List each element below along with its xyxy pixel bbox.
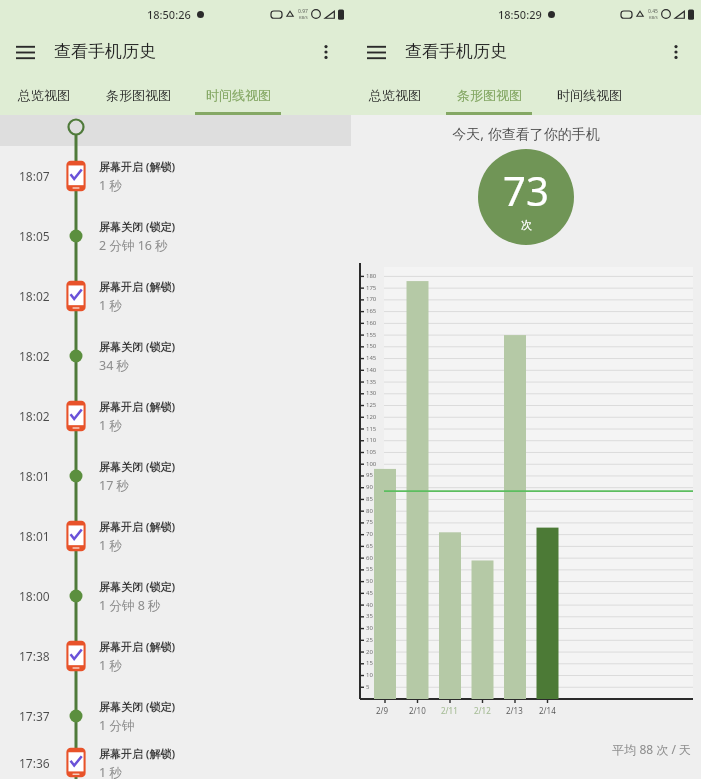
button[interactable]: 18:02: [0, 326, 351, 386]
staticText: 条形图视图: [457, 87, 522, 103]
staticText: 95: [366, 471, 373, 479]
staticText: 1 秒: [99, 764, 122, 779]
button[interactable]: 18:02: [0, 266, 351, 326]
staticText: 1 分钟: [99, 717, 135, 734]
staticText: 155: [366, 331, 377, 339]
staticText: KB/S: [649, 15, 658, 20]
staticText: 2/10: [409, 705, 426, 716]
staticText: 18:02: [19, 408, 50, 424]
staticText: 115: [366, 425, 377, 433]
staticText: 屏幕关闭 (锁定): [99, 579, 176, 594]
staticText: 2/13: [506, 705, 523, 716]
staticText: 18:02: [19, 348, 50, 364]
staticText: 110: [366, 436, 377, 444]
button[interactable]: 17:38: [0, 626, 351, 686]
button[interactable]: 18:01: [0, 506, 351, 566]
staticText: 80: [366, 507, 373, 515]
staticText: 屏幕关闭 (锁定): [99, 219, 176, 234]
staticText: 屏幕关闭 (锁定): [99, 339, 176, 354]
button[interactable]: 18:01: [0, 446, 351, 506]
staticText: 时间线视图: [557, 87, 622, 103]
staticText: 18:01: [19, 468, 50, 484]
staticText: 1 秒: [99, 417, 122, 434]
staticText: 屏幕开启 (解锁): [99, 159, 176, 174]
staticText: 查看手机历史: [54, 41, 156, 62]
staticText: 17:36: [19, 755, 50, 771]
staticText: 屏幕关闭 (锁定): [99, 459, 176, 474]
staticText: 2/12: [474, 705, 491, 716]
button[interactable]: 17:36: [0, 746, 351, 779]
staticText: 40: [366, 601, 373, 609]
staticText: 135: [366, 378, 377, 386]
staticText: 时间线视图: [206, 87, 271, 103]
button[interactable]: 总览视图: [0, 75, 88, 115]
staticText: 100: [366, 460, 377, 468]
staticText: 1 秒: [99, 537, 122, 554]
button[interactable]: More options: [657, 33, 695, 71]
staticText: 130: [366, 389, 377, 397]
staticText: 75: [366, 518, 373, 526]
staticText: 今天, 你查看了你的手机: [351, 124, 701, 143]
staticText: 1 分钟 8 秒: [99, 597, 161, 614]
staticText: 10: [366, 671, 373, 679]
staticText: 1 秒: [99, 297, 122, 314]
staticText: 65: [366, 542, 373, 550]
button[interactable]: 18:07: [0, 146, 351, 206]
staticText: 屏幕开启 (解锁): [99, 519, 176, 534]
button[interactable]: 时间线视图: [188, 75, 288, 115]
staticText: 屏幕开启 (解锁): [99, 399, 176, 414]
staticText: 25: [366, 636, 373, 644]
staticText: 2/11: [441, 705, 458, 716]
staticText: 170: [366, 295, 377, 303]
staticText: 60: [366, 554, 373, 562]
staticText: 180: [366, 272, 377, 280]
staticText: 18:05: [19, 228, 50, 244]
staticText: 140: [366, 366, 377, 374]
staticText: 2/14: [539, 705, 556, 716]
staticText: 查看手机历史: [405, 41, 507, 62]
button[interactable]: 时间线视图: [539, 75, 639, 115]
staticText: KB/S: [299, 15, 308, 20]
button[interactable]: 条形图视图: [439, 75, 539, 115]
staticText: 17 秒: [99, 477, 130, 494]
button[interactable]: 18:02: [0, 386, 351, 446]
staticText: 105: [366, 448, 377, 456]
staticText: 34 秒: [99, 357, 130, 374]
staticText: 屏幕关闭 (锁定): [99, 699, 176, 714]
staticText: 30: [366, 624, 373, 632]
staticText: 55: [366, 565, 373, 573]
button[interactable]: 总览视图: [351, 75, 439, 115]
staticText: 18:07: [19, 168, 50, 184]
button[interactable]: Menu: [6, 33, 44, 71]
staticText: 150: [366, 342, 377, 350]
staticText: 125: [366, 401, 377, 409]
staticText: 17:38: [19, 648, 50, 664]
staticText: 18:01: [19, 528, 50, 544]
staticText: 18:02: [19, 288, 50, 304]
staticText: 屏幕开启 (解锁): [99, 639, 176, 654]
staticText: 160: [366, 319, 377, 327]
staticText: 平均 88 次 / 天: [351, 741, 691, 757]
staticText: 条形图视图: [106, 87, 171, 103]
staticText: 15: [366, 659, 373, 667]
staticText: 1 秒: [99, 657, 122, 674]
staticText: 18:50:26: [147, 7, 191, 22]
staticText: 175: [366, 284, 377, 292]
staticText: 120: [366, 413, 377, 421]
button[interactable]: 18:05: [0, 206, 351, 266]
staticText: 165: [366, 307, 377, 315]
button[interactable]: More options: [307, 33, 345, 71]
button[interactable]: 73: [478, 149, 574, 245]
staticText: 1 秒: [99, 177, 122, 194]
button[interactable]: 17:37: [0, 686, 351, 746]
button[interactable]: Menu: [357, 33, 395, 71]
button[interactable]: 18:00: [0, 566, 351, 626]
staticText: 17:37: [19, 708, 50, 724]
staticText: 2 分钟 16 秒: [99, 237, 168, 254]
button[interactable]: 条形图视图: [88, 75, 188, 115]
staticText: 50: [366, 577, 373, 585]
staticText: 总览视图: [369, 87, 421, 103]
staticText: 45: [366, 589, 373, 597]
staticText: 总览视图: [18, 87, 70, 103]
staticText: 35: [366, 612, 373, 620]
